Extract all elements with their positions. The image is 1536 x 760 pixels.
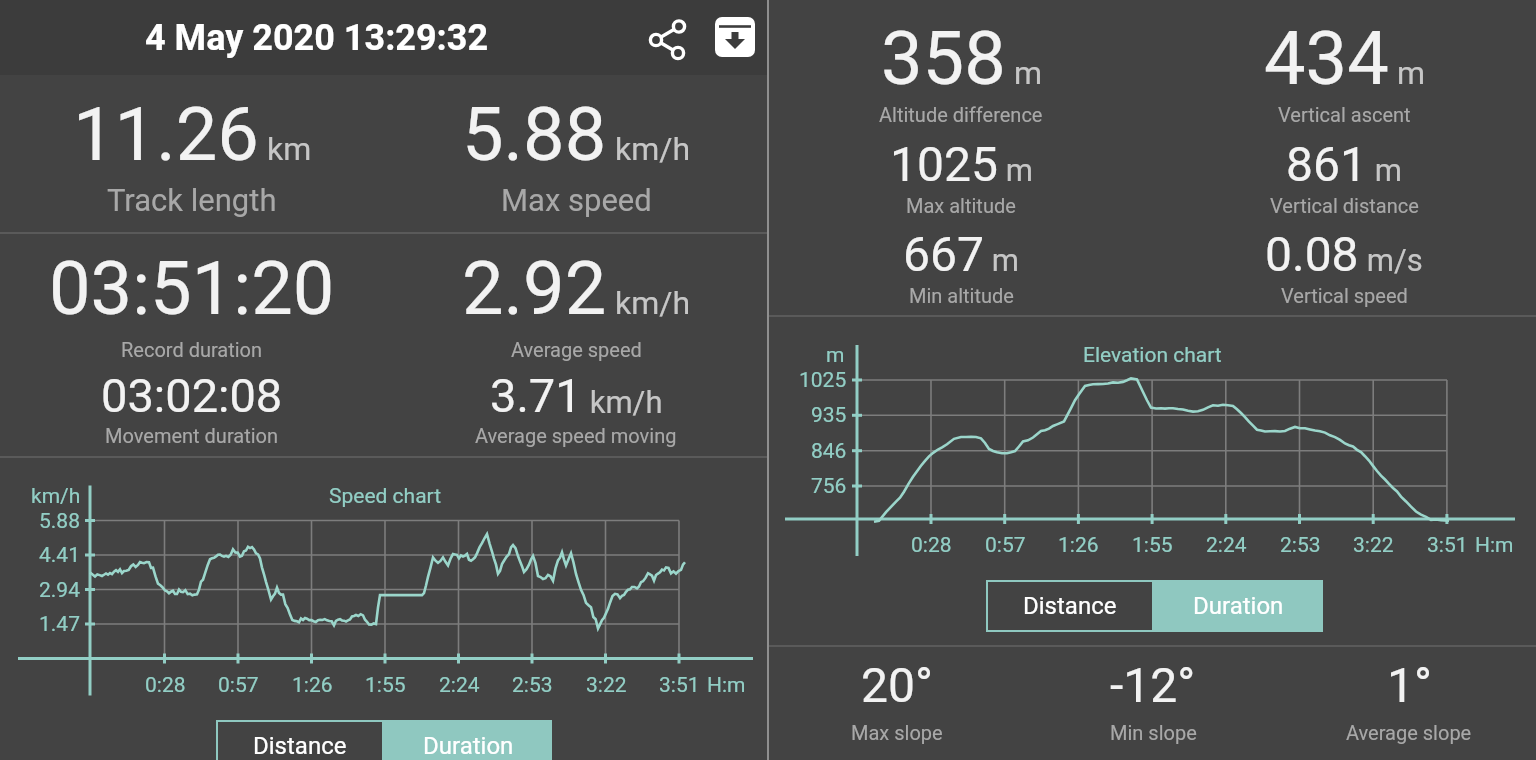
staticText: 434 (1264, 15, 1389, 102)
staticText: 0:57 (218, 673, 259, 698)
staticText: 1:55 (1132, 533, 1173, 558)
staticText: 0.08 (1265, 226, 1359, 282)
staticText: Distance (253, 732, 347, 760)
staticText: 2:53 (512, 673, 553, 698)
staticText: Duration (1193, 592, 1284, 620)
staticText: m (1367, 152, 1402, 188)
staticText: 2:24 (1206, 533, 1247, 558)
staticText: H:m (1475, 533, 1514, 558)
staticText: 1:26 (1058, 533, 1099, 558)
staticText: 5.88 (462, 91, 607, 178)
staticText: m (1006, 54, 1042, 92)
staticText: m (998, 152, 1033, 188)
staticText: 3:22 (1353, 533, 1394, 558)
staticText: 935 (811, 403, 847, 428)
staticText: Vertical distance (1270, 194, 1419, 217)
button[interactable]: Duration (384, 720, 552, 760)
staticText: 0:57 (985, 533, 1026, 558)
staticText: 0:28 (145, 673, 186, 698)
staticText: 2:53 (1280, 533, 1321, 558)
staticText: Average speed (511, 338, 642, 361)
staticText: 3:22 (586, 673, 627, 698)
staticText: Average slope (1346, 721, 1472, 744)
staticText: 5.88 (39, 509, 80, 534)
staticText: Record duration (121, 338, 263, 361)
staticText: Max speed (501, 182, 652, 218)
staticText: 846 (811, 439, 847, 464)
staticText: m/s (1359, 242, 1423, 278)
staticText: 358 (881, 15, 1006, 102)
staticText: km/h (31, 484, 81, 509)
button[interactable] (650, 22, 684, 56)
staticText: 11.26 (73, 91, 259, 178)
staticText: km/h (607, 130, 691, 168)
staticText: Elevation chart (1083, 343, 1222, 368)
staticText: 2:24 (439, 673, 480, 698)
staticText: 3.71 (490, 368, 582, 423)
staticText: km/h (607, 284, 691, 322)
staticText: Speed chart (329, 484, 442, 509)
staticText: 03:02:08 (101, 368, 283, 423)
staticText: km/h (582, 384, 663, 420)
staticText: 1025 (890, 136, 998, 192)
staticText: 756 (811, 474, 847, 499)
staticText: -12° (1110, 657, 1196, 713)
staticText: 1025 (799, 368, 847, 393)
staticText: 861 (1286, 136, 1367, 192)
staticText: 1:55 (365, 673, 406, 698)
staticText: Max slope (851, 721, 943, 744)
staticText: m (984, 242, 1019, 278)
staticText: 1:26 (292, 673, 333, 698)
staticText: 3:51 (1427, 533, 1468, 558)
staticText: Vertical speed (1281, 284, 1408, 307)
staticText: 0:28 (911, 533, 952, 558)
staticText: 2.94 (39, 578, 80, 603)
button[interactable]: Distance (216, 720, 384, 760)
staticText: Track length (107, 182, 277, 218)
staticText: Movement duration (105, 424, 279, 447)
staticText: Average speed moving (475, 424, 677, 447)
staticText: Vertical ascent (1278, 103, 1411, 126)
staticText: H:m (707, 673, 746, 698)
staticText: 1.47 (39, 612, 80, 637)
staticText: km (259, 130, 312, 168)
staticText: 4 May 2020 13:29:32 (145, 17, 489, 59)
staticText: Altitude difference (879, 103, 1043, 126)
staticText: 667 (903, 226, 984, 282)
staticText: Duration (423, 732, 514, 760)
button[interactable]: Duration (1154, 580, 1323, 632)
staticText: Min altitude (909, 284, 1014, 307)
staticText: 20° (861, 657, 933, 713)
staticText: Max altitude (906, 194, 1016, 217)
button[interactable] (715, 17, 755, 57)
staticText: 3:51 (659, 673, 700, 698)
staticText: Min slope (1110, 721, 1197, 744)
staticText: 1° (1387, 657, 1432, 713)
staticText: 4.41 (39, 543, 80, 568)
staticText: m (1389, 54, 1425, 92)
staticText: m (826, 343, 845, 368)
staticText: 03:51:20 (49, 245, 335, 332)
staticText: 2.92 (462, 245, 607, 332)
button[interactable]: Distance (986, 580, 1154, 632)
staticText: Distance (1023, 592, 1117, 620)
